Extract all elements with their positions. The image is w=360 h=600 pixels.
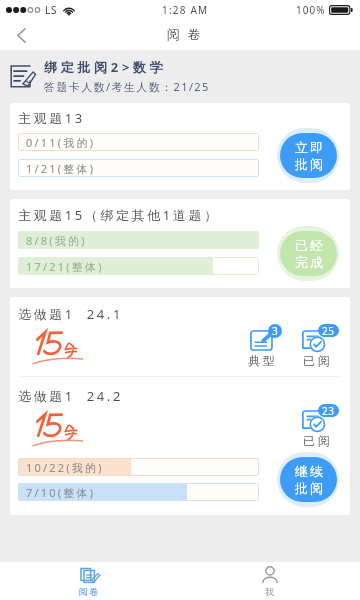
staticText: 1/21(整体) [26, 161, 96, 176]
button[interactable]: Back [0, 20, 42, 50]
staticText: 立即 [294, 139, 324, 155]
staticText: 已阅 [303, 353, 333, 368]
staticText: 选做题1 24.2 [18, 387, 123, 405]
staticText: 已阅 [303, 433, 333, 448]
staticText: 8/8(我的) [26, 233, 87, 248]
staticText: 阅卷 [79, 586, 101, 597]
staticText: 7/10(整体) [26, 485, 96, 500]
staticText: 批阅 [294, 480, 324, 496]
staticText: 23 [322, 404, 335, 417]
button[interactable]: 继续 [277, 452, 339, 507]
staticText: 0/11(我的) [26, 135, 96, 150]
staticText: 典型 [248, 353, 278, 368]
button[interactable]: 已经 [277, 226, 339, 281]
staticText: 完成 [294, 254, 324, 270]
button[interactable]: 25 [302, 324, 339, 368]
staticText: 1:28 AM [162, 3, 209, 17]
staticText: 继续 [294, 463, 324, 479]
staticText: 阅卷 [163, 26, 204, 42]
button[interactable]: 立即 [277, 128, 339, 183]
staticText: 10/22(我的) [26, 460, 104, 475]
staticText: 选做题1 24.1 [18, 305, 123, 323]
staticText: 已经 [294, 237, 324, 253]
button[interactable]: 我 [180, 562, 360, 600]
staticText: 主观题13 [18, 109, 85, 127]
button[interactable]: 阅卷 [0, 562, 180, 600]
staticText: 我 [265, 586, 276, 597]
staticText: 答题卡人数/考生人数：21/25 [44, 79, 210, 94]
staticText: 100% [296, 3, 326, 17]
staticText: 批阅 [294, 156, 324, 172]
staticText: 3 [272, 324, 279, 338]
staticText: 主观题15（绑定其他1道题） [18, 206, 220, 224]
button[interactable]: 23 [302, 404, 339, 448]
button[interactable]: 3 [250, 324, 282, 368]
staticText: 绑定批阅2>数学 [44, 58, 167, 76]
staticText: LS [45, 3, 58, 17]
staticText: 25 [322, 324, 335, 337]
staticText: 17/21(整体) [26, 259, 104, 274]
